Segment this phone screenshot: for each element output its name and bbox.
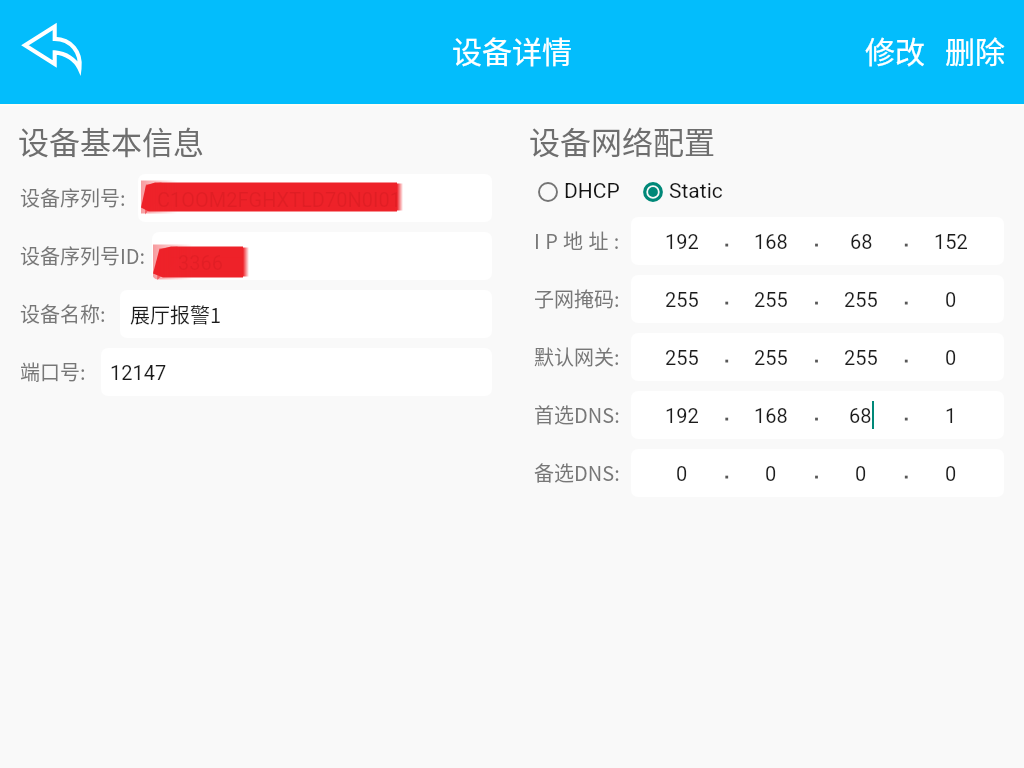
staticText: 0 [855, 462, 867, 485]
staticText: 端口号: [20, 357, 86, 386]
staticText: 设备序列号: [20, 183, 126, 212]
staticText: 255 [754, 346, 788, 369]
staticText: 设备网络配置 [529, 118, 715, 163]
staticText: 1 [945, 404, 957, 427]
button[interactable]: Back [8, 12, 96, 92]
staticText: 0 [765, 462, 777, 485]
staticText: 子网掩码: [534, 284, 620, 313]
staticText: 168 [754, 230, 788, 253]
staticText: 展厅报警1 [130, 300, 222, 329]
button[interactable]: 255 [631, 275, 1004, 323]
staticText: 备选DNS: [534, 458, 620, 487]
staticText: 168 [754, 404, 788, 427]
staticText: IP地址: [534, 226, 625, 255]
staticText: 3366 [178, 251, 223, 274]
staticText: C1OOM2FGHXTLD70N0I01 [157, 188, 401, 211]
staticText: 152 [934, 230, 968, 253]
button[interactable]: 12147 [101, 348, 492, 396]
staticText: 0 [676, 462, 688, 485]
staticText: 255 [754, 288, 788, 311]
button[interactable]: DHCP [535, 176, 623, 207]
staticText: 设备详情 [452, 28, 572, 71]
staticText: 192 [665, 230, 699, 253]
staticText: 255 [844, 346, 878, 369]
staticText: 0 [945, 288, 957, 311]
button[interactable]: 3366 [152, 232, 492, 280]
button[interactable]: C1OOM2FGHXTLD70N0I01 [138, 174, 492, 222]
staticText: 12147 [110, 361, 167, 384]
staticText: 删除 [945, 28, 1005, 71]
staticText: 192 [665, 404, 699, 427]
button[interactable]: 删除 [941, 20, 1009, 79]
staticText: 设备基本信息 [18, 118, 204, 163]
button[interactable]: 255 [631, 333, 1004, 381]
button[interactable]: 192 [631, 217, 1004, 265]
button[interactable]: 0 [631, 449, 1004, 497]
staticText: 设备名称: [20, 299, 106, 328]
button[interactable]: 修改 [861, 20, 929, 79]
staticText: Static [669, 179, 723, 204]
staticText: 0 [945, 346, 957, 369]
button[interactable]: Static [640, 176, 726, 207]
staticText: 255 [844, 288, 878, 311]
staticText: 68 [849, 404, 872, 427]
staticText: 修改 [865, 28, 925, 71]
staticText: 0 [945, 462, 957, 485]
button[interactable]: 展厅报警1 [120, 290, 492, 338]
staticText: 默认网关: [534, 342, 620, 371]
staticText: 设备序列号ID: [20, 241, 146, 270]
staticText: 255 [665, 288, 699, 311]
staticText: DHCP [564, 179, 620, 204]
staticText: 68 [850, 230, 873, 253]
button[interactable]: 192 [631, 391, 1004, 439]
staticText: 首选DNS: [534, 400, 620, 429]
staticText: 255 [665, 346, 699, 369]
